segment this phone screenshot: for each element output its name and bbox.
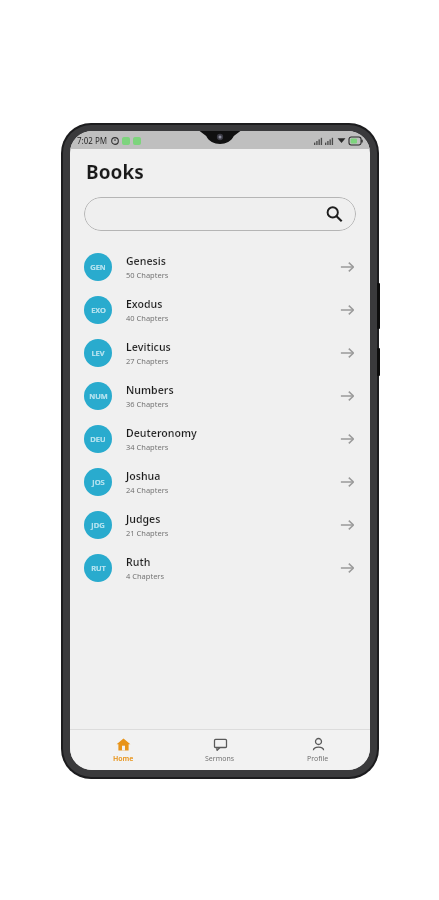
staticText: Genesis	[126, 254, 166, 268]
other: Open Numbers	[338, 387, 356, 405]
other: Open Genesis	[338, 258, 356, 276]
button[interactable]: NUM	[70, 374, 370, 417]
staticText: JOS	[92, 477, 105, 487]
other: Open Ruth	[338, 559, 356, 577]
other: Search	[326, 206, 342, 222]
staticText: Ruth	[126, 555, 151, 569]
staticText: 21 Chapters	[126, 528, 169, 538]
button[interactable]: JDG	[70, 503, 370, 546]
staticText: 27 Chapters	[126, 356, 169, 366]
staticText: Joshua	[126, 469, 161, 483]
staticText: Sermons	[205, 754, 235, 764]
button[interactable]: RUT	[70, 546, 370, 589]
button[interactable]: Search	[84, 197, 356, 231]
button[interactable]: EXO	[70, 288, 370, 331]
staticText: RUT	[91, 563, 106, 573]
other: Open Exodus	[338, 301, 356, 319]
staticText: Numbers	[126, 383, 174, 397]
staticText: JDG	[91, 520, 105, 530]
button[interactable]: Sermons	[175, 730, 265, 770]
button[interactable]: JOS	[70, 460, 370, 503]
button[interactable]: GEN	[70, 245, 370, 288]
staticText: DEU	[90, 434, 106, 444]
staticText: 40 Chapters	[126, 313, 169, 323]
staticText: 50 Chapters	[126, 270, 169, 280]
staticText: GEN	[90, 262, 106, 272]
staticText: EXO	[91, 305, 106, 315]
staticText: 4 Chapters	[126, 571, 165, 581]
button[interactable]: DEU	[70, 417, 370, 460]
staticText: LEV	[91, 348, 105, 358]
button[interactable]: Home	[78, 730, 168, 770]
staticText: Home	[113, 754, 134, 764]
staticText: NUM	[89, 391, 108, 401]
staticText: Judges	[126, 512, 161, 526]
staticText: Books	[86, 159, 144, 185]
button[interactable]: Profile	[273, 730, 363, 770]
other: Open Judges	[338, 516, 356, 534]
staticText: Deuteronomy	[126, 426, 197, 440]
button[interactable]: LEV	[70, 331, 370, 374]
other: Open Deuteronomy	[338, 430, 356, 448]
staticText: 24 Chapters	[126, 485, 169, 495]
staticText: Exodus	[126, 297, 163, 311]
staticText: 36 Chapters	[126, 399, 169, 409]
staticText: 34 Chapters	[126, 442, 169, 452]
other: Open Joshua	[338, 473, 356, 491]
staticText: Leviticus	[126, 340, 171, 354]
other: Open Leviticus	[338, 344, 356, 362]
staticText: 7:02 PM	[77, 135, 108, 146]
staticText: Profile	[307, 754, 329, 764]
